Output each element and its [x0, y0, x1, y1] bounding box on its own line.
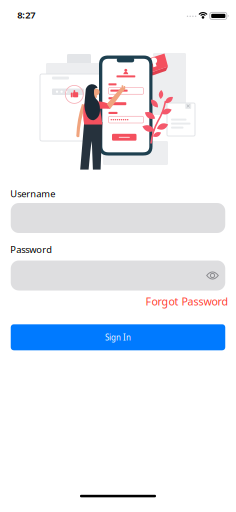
button[interactable]: Forgot Password: [145, 294, 228, 308]
staticText: Username: [10, 187, 55, 200]
staticText: Sign In: [105, 332, 131, 343]
staticText: Password: [10, 243, 52, 255]
staticText: 8:27: [17, 9, 35, 21]
button[interactable]: Show password: [205, 271, 219, 280]
button[interactable]: Password: [11, 260, 225, 290]
button[interactable]: Sign In: [11, 324, 225, 350]
staticText: Forgot Password: [145, 294, 228, 308]
